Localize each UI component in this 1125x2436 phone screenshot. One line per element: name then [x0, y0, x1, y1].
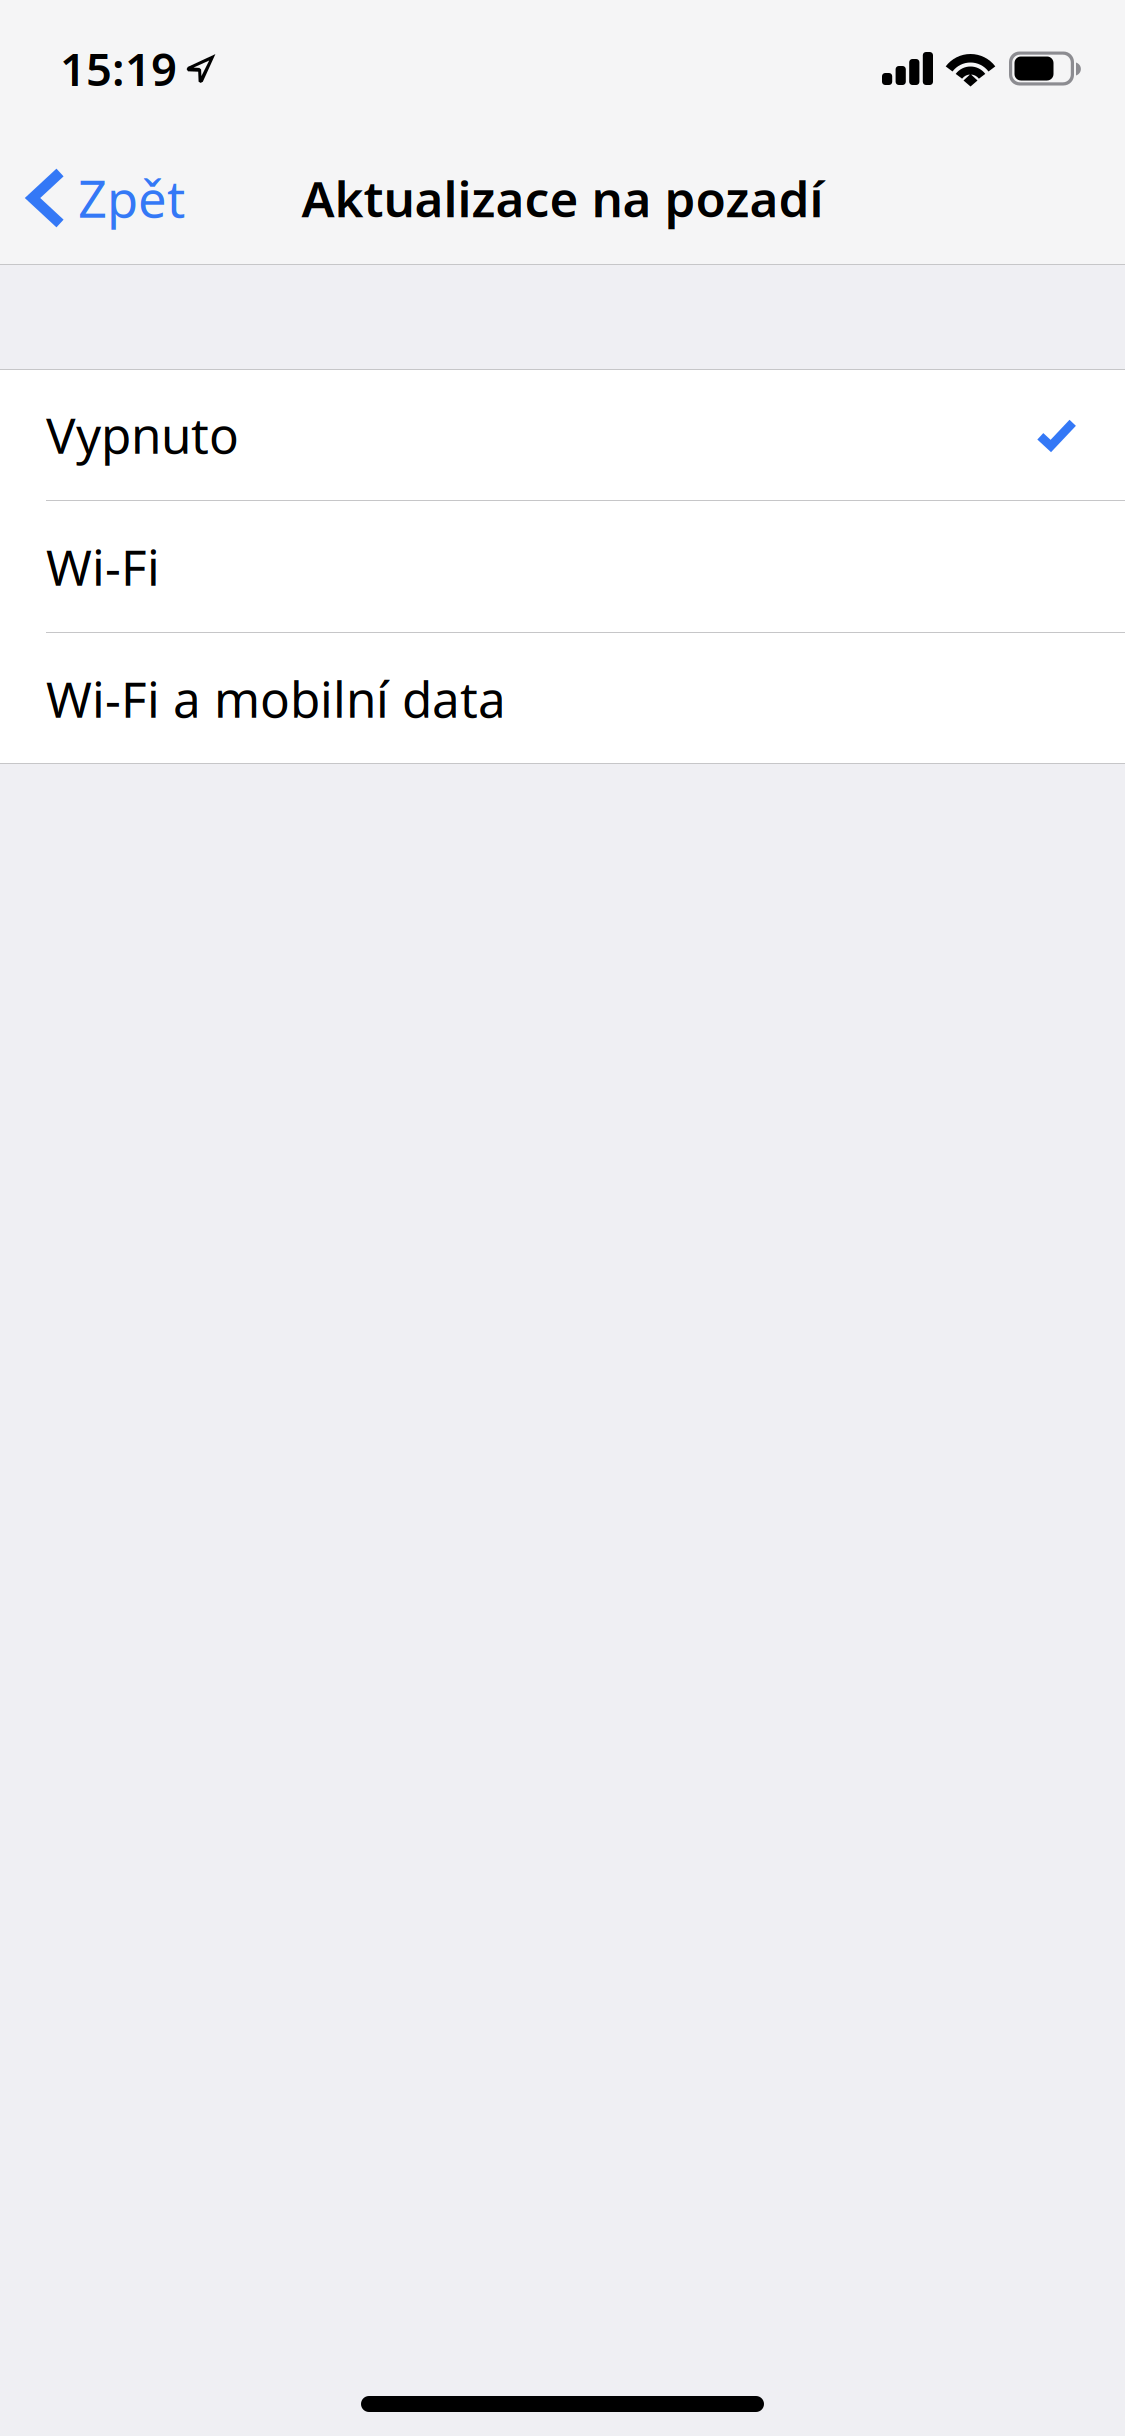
staticText: Wi-Fi a mobilní data — [46, 666, 506, 731]
button[interactable]: Wi-Fi — [0, 501, 1125, 632]
staticText: 15:19 — [60, 38, 177, 99]
button[interactable]: Wi-Fi a mobilní data — [0, 633, 1125, 764]
staticText: Vypnuto — [46, 402, 239, 467]
staticText: Wi-Fi — [46, 534, 160, 599]
staticText: Zpět — [78, 164, 185, 232]
staticText: Aktualizace na pozadí — [301, 165, 823, 231]
button[interactable]: Vypnuto — [0, 369, 1125, 500]
button[interactable]: Zpět — [0, 148, 203, 248]
